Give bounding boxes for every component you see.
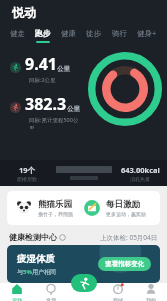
staticText: 健走	[10, 29, 25, 38]
staticText: 运动	[12, 297, 22, 301]
button[interactable]: 健康	[59, 27, 78, 45]
button[interactable]: 商城	[101, 283, 134, 301]
button[interactable]: 19个	[0, 160, 54, 186]
staticText: 发现	[46, 297, 56, 301]
staticText: 健康检测中心	[9, 232, 57, 242]
staticText: 徒步	[86, 29, 101, 38]
button[interactable]: 熊猫乐园	[7, 191, 83, 225]
button[interactable]: 疲湿体质	[7, 245, 160, 283]
staticText: 公里	[67, 105, 80, 113]
staticText: 目标:累计里程500公里	[29, 116, 83, 129]
staticText: 撸竹子，养熊猫	[38, 211, 73, 217]
button[interactable]: Activity rings	[88, 52, 162, 126]
staticText: 我的	[146, 297, 156, 301]
staticText: 9.41	[25, 53, 57, 75]
button[interactable]	[54, 160, 113, 186]
staticText: 爬楼层数	[17, 176, 37, 182]
button[interactable]: 查看指标变化	[98, 257, 151, 271]
staticText: 用户相同	[32, 268, 56, 276]
button[interactable]: 运动	[0, 283, 34, 301]
button[interactable]: 发现	[34, 283, 68, 301]
staticText: 疲湿体质	[17, 253, 55, 265]
button[interactable]: 骑行	[110, 27, 129, 45]
button[interactable]: 健康检测中心	[9, 232, 66, 242]
staticText: 643.00kcal	[121, 165, 160, 175]
staticText: 382.3	[25, 93, 67, 115]
button[interactable]: 643.00kcal	[113, 160, 167, 186]
staticText: 与	[17, 268, 23, 276]
button[interactable]: 我的	[134, 283, 167, 301]
staticText: 19个	[19, 165, 36, 175]
button[interactable]: 每日激励	[83, 191, 160, 225]
staticText: 公里	[57, 65, 70, 73]
staticText: 目标:2公里	[29, 76, 56, 84]
staticText: 商城	[113, 297, 123, 301]
button[interactable]: 健身+	[135, 26, 159, 45]
button[interactable]: 跑步	[33, 27, 52, 45]
staticText: 更多运动，赢奖励	[106, 211, 146, 217]
button[interactable]: Start run	[71, 274, 97, 292]
staticText: 跑步	[35, 29, 50, 38]
staticText: 悦动	[12, 5, 36, 20]
staticText: 消耗热量	[130, 176, 150, 182]
staticText: 每日激励	[106, 199, 140, 210]
staticText: 5%	[23, 268, 32, 276]
button[interactable]: 健走	[8, 27, 27, 45]
staticText: 健康	[61, 29, 76, 38]
staticText: 查看指标变化	[105, 260, 144, 268]
staticText: 健身+	[137, 28, 157, 38]
staticText: 骑行	[112, 29, 127, 38]
staticText: 熊猫乐园	[38, 199, 72, 210]
staticText: 上次体检: 05月04日	[100, 233, 158, 242]
button[interactable]: 徒步	[84, 27, 103, 45]
